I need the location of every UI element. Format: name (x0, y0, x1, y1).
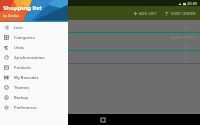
staticText: by Devika (3, 13, 19, 18)
staticText: Lists (14, 25, 23, 30)
button[interactable]: Recent apps (98, 115, 107, 124)
staticText: My Barcodes (14, 75, 39, 80)
button[interactable]: Shopping list (0, 0, 68, 22)
button[interactable]: SORT ORDER (164, 10, 197, 17)
button[interactable]: Lists (0, 22, 68, 32)
button[interactable]: Synchronization (0, 52, 68, 62)
staticText: 16,00 € 1,00 € (169, 35, 195, 40)
button[interactable]: Edit (0, 20, 200, 32)
staticText: Shopping list (3, 4, 42, 12)
button[interactable]: ADD LIST (132, 10, 158, 17)
button[interactable]: Edit (0, 51, 200, 63)
staticText: Synchronization (14, 55, 45, 60)
staticText: Categories (14, 35, 35, 40)
button[interactable]: Units (0, 42, 68, 52)
staticText: Units (14, 45, 25, 50)
staticText: Lorem ipsum dolor sit amet (3, 66, 55, 71)
button[interactable]: Products (0, 62, 68, 72)
staticText: Preferences (14, 105, 37, 110)
button[interactable]: My Barcodes (0, 72, 68, 82)
button[interactable]: Lorem ipsum dolor sit amet (0, 64, 200, 72)
button[interactable]: 16,00 € 1,00 € (0, 33, 200, 50)
staticText: 20:05 (187, 1, 198, 6)
button[interactable]: Backup (0, 92, 68, 102)
button[interactable]: Preferences (0, 102, 68, 112)
button[interactable]: Themes (0, 82, 68, 92)
button[interactable]: Categories (0, 32, 68, 42)
staticText: SORT ORDER (171, 11, 196, 16)
staticText: Themes (14, 85, 30, 90)
staticText: ADD LIST (139, 11, 157, 16)
staticText: Backup (14, 95, 29, 100)
staticText: Products (14, 65, 31, 70)
